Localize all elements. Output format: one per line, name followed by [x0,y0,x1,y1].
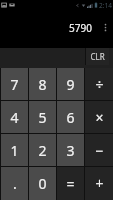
button[interactable]: 6 [57,101,84,133]
staticText: 2:14 [99,1,112,10]
staticText: 5790 [69,21,92,35]
button[interactable]: × [85,101,113,133]
button[interactable]: 1 [1,134,28,166]
button[interactable]: 8 [29,68,56,100]
staticText: 5 [38,108,47,127]
button[interactable]: = [57,167,84,200]
button[interactable]: 4 [1,101,28,133]
button[interactable]: More options [100,22,111,33]
button[interactable]: 9 [57,68,84,100]
button[interactable]: 5 [29,101,56,133]
staticText: . [13,174,17,193]
staticText: ÷ [95,75,104,94]
staticText: 3 [66,141,75,160]
button[interactable]: + [85,167,113,200]
staticText: = [66,174,75,193]
button[interactable]: . [1,167,28,200]
staticText: × [95,108,104,127]
button[interactable]: 3 [57,134,84,166]
staticText: 1 [10,141,19,160]
staticText: CLR [90,51,105,62]
button[interactable]: ÷ [85,68,113,100]
staticText: 2 [38,141,47,160]
button[interactable]: − [85,134,113,166]
staticText: 4 [10,108,19,127]
staticText: 6 [66,108,75,127]
staticText: 8 [38,75,47,94]
button[interactable]: 0 [29,167,56,200]
button[interactable]: 7 [1,68,28,100]
button[interactable]: 2 [29,134,56,166]
staticText: + [95,174,104,193]
staticText: 0 [38,174,47,193]
staticText: 7 [10,75,19,94]
staticText: − [95,141,104,160]
staticText: 9 [66,75,75,94]
button[interactable]: CLR [86,48,109,65]
